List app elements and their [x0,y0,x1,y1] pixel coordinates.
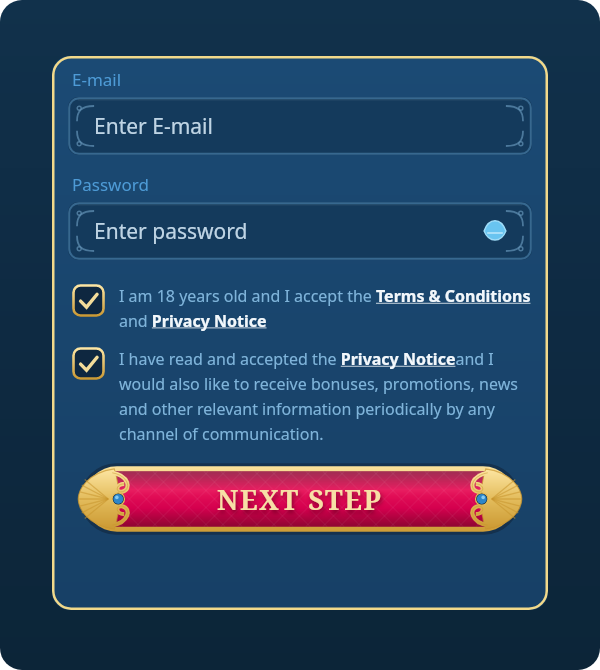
staticText: Enter password [94,217,248,246]
button[interactable]: Enter password [68,202,532,260]
staticText: E-mail [72,68,122,91]
button[interactable]: Checkbox checked [68,345,532,444]
button[interactable]: Enter E-mail [68,97,532,155]
staticText: Password [72,173,149,196]
staticText: I have read and accepted the Privacy Not… [119,348,532,444]
button[interactable]: Checkbox checked [68,282,532,331]
button[interactable]: Show password [480,216,510,246]
other: Checkbox checked [72,347,105,380]
button[interactable]: NEXT STEP [68,460,532,538]
staticText: Enter E-mail [94,112,213,141]
staticText: I am 18 years old and I accept the Terms… [119,285,532,331]
staticText: NEXT STEP [217,481,383,518]
other: Checkbox checked [72,284,105,317]
